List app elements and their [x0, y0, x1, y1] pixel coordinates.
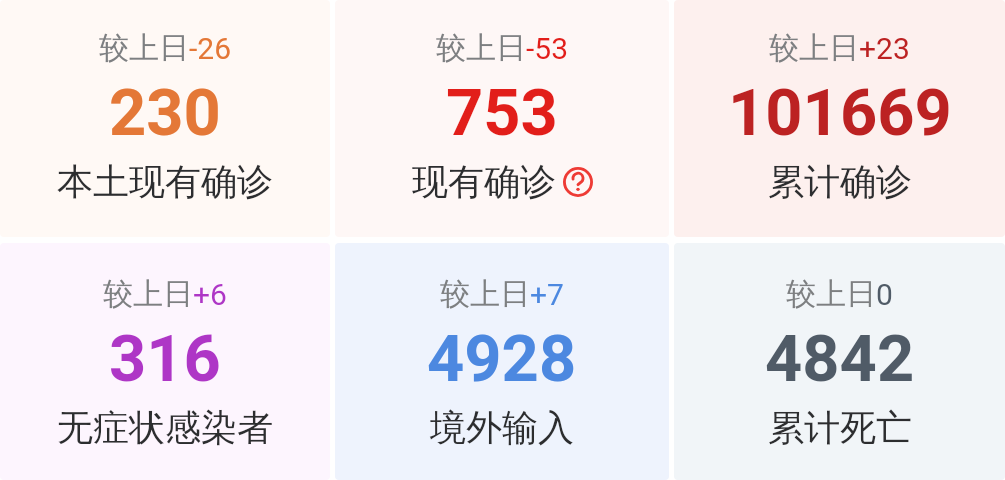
button[interactable]: 较上日: [335, 243, 669, 480]
staticText: 累计确诊: [768, 159, 912, 204]
staticText: 较上日: [769, 29, 859, 67]
staticText: 本土现有确诊: [57, 159, 273, 204]
staticText: 较上日: [440, 275, 530, 313]
staticText: 现有确诊: [412, 159, 556, 204]
staticText: 0: [876, 277, 893, 312]
button[interactable]: 较上日: [0, 0, 330, 237]
staticText: 4842: [765, 321, 915, 397]
staticText: +6: [193, 277, 227, 312]
button[interactable]: 较上日: [0, 243, 330, 480]
staticText: +23: [859, 31, 910, 66]
staticText: -26: [189, 31, 232, 66]
button[interactable]: 较上日: [674, 243, 1005, 480]
staticText: 316: [109, 321, 221, 397]
staticText: 较上日: [436, 29, 526, 67]
staticText: 较上日: [786, 275, 876, 313]
staticText: 4928: [427, 321, 577, 397]
button[interactable]: 较上日: [674, 0, 1005, 237]
staticText: 境外输入: [430, 405, 574, 450]
staticText: 累计死亡: [768, 405, 912, 450]
staticText: +7: [530, 277, 564, 312]
button[interactable]: 说明: [563, 167, 593, 197]
staticText: 230: [109, 75, 221, 151]
staticText: 较上日: [99, 29, 189, 67]
staticText: 无症状感染者: [57, 405, 273, 450]
staticText: 753: [446, 75, 558, 151]
staticText: -53: [526, 31, 569, 66]
staticText: 较上日: [103, 275, 193, 313]
staticText: 101669: [728, 75, 952, 151]
button[interactable]: 较上日: [335, 0, 669, 237]
